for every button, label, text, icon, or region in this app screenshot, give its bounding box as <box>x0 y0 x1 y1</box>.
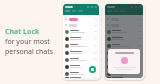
button[interactable] <box>63 63 99 70</box>
button[interactable] <box>105 77 143 78</box>
button[interactable] <box>105 42 143 49</box>
button[interactable] <box>63 28 99 35</box>
button[interactable] <box>63 77 99 78</box>
button[interactable] <box>105 56 143 63</box>
button[interactable] <box>63 42 99 49</box>
staticText: personal chats <box>5 47 54 57</box>
button[interactable] <box>63 16 99 22</box>
button[interactable] <box>105 70 143 77</box>
button[interactable] <box>105 35 143 42</box>
button[interactable] <box>105 28 143 35</box>
button[interactable]: New chat <box>89 66 96 73</box>
staticText: for your most <box>5 37 50 47</box>
button[interactable] <box>63 49 99 56</box>
staticText: Chat Lock <box>5 27 40 37</box>
button[interactable] <box>105 22 143 28</box>
button[interactable] <box>105 63 143 70</box>
button[interactable] <box>105 16 143 22</box>
button[interactable] <box>63 35 99 42</box>
button[interactable] <box>105 49 143 56</box>
button[interactable] <box>63 22 99 28</box>
button[interactable] <box>63 70 99 77</box>
button[interactable] <box>63 56 99 63</box>
